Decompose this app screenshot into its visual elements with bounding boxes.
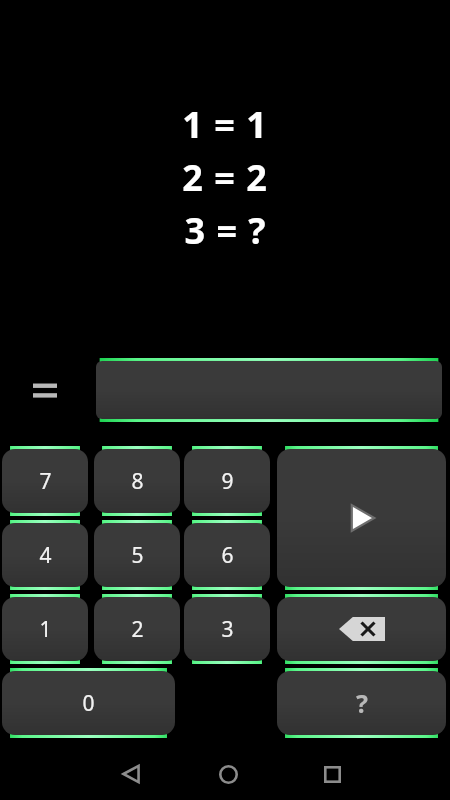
staticText: 1	[39, 615, 52, 644]
staticText: 5	[131, 541, 144, 570]
staticText: 9	[221, 467, 234, 496]
staticText: 3	[221, 615, 234, 644]
button[interactable]: 6	[184, 520, 270, 590]
button[interactable]: Back	[110, 753, 152, 795]
button[interactable]: 1	[2, 594, 88, 664]
button[interactable]: 4	[2, 520, 88, 590]
button[interactable]: 5	[94, 520, 180, 590]
button[interactable]: Submit answer	[277, 446, 446, 590]
button[interactable]: Home	[207, 753, 249, 795]
staticText: 4	[39, 541, 52, 570]
staticText: 2	[131, 615, 144, 644]
button[interactable]: ?	[277, 668, 446, 738]
button[interactable]: 8	[94, 446, 180, 516]
button[interactable]: 9	[184, 446, 270, 516]
staticText: 1 = 1	[182, 100, 268, 153]
button[interactable]: 0	[2, 668, 175, 738]
other: Submit answer	[345, 501, 379, 535]
staticText: 6	[221, 541, 234, 570]
button[interactable]: Backspace	[277, 594, 446, 664]
button[interactable]: 2	[94, 594, 180, 664]
staticText: 7	[39, 467, 52, 496]
button[interactable]: 3	[184, 594, 270, 664]
staticText: 0	[82, 689, 95, 718]
button[interactable]	[96, 358, 442, 422]
staticText: 8	[131, 467, 144, 496]
staticText: ?	[356, 686, 368, 720]
button[interactable]: Recent apps	[311, 753, 353, 795]
staticText: 2 = 2	[182, 153, 268, 206]
other: Backspace	[339, 617, 385, 641]
button[interactable]: 7	[2, 446, 88, 516]
staticText: 3 = ?	[184, 206, 267, 259]
